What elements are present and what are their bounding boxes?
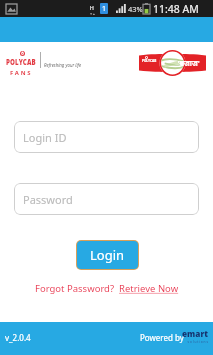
staticText: Password xyxy=(23,192,73,207)
button[interactable]: Login ID xyxy=(14,121,199,153)
button[interactable]: Retrieve Now xyxy=(119,282,179,295)
staticText: FANS xyxy=(10,69,33,77)
staticText: Forgot Password? xyxy=(35,282,115,295)
button[interactable]: Password xyxy=(14,183,199,215)
staticText: 11:48 AM xyxy=(153,2,199,16)
staticText: 'बजाज' xyxy=(177,58,200,68)
button[interactable]: Login xyxy=(77,241,138,269)
staticText: Login xyxy=(90,246,125,264)
staticText: Retrieve Now xyxy=(119,282,179,295)
staticText: 1 xyxy=(102,4,107,14)
staticText: POLYCAB xyxy=(6,56,36,68)
staticText: v_2.0.4 xyxy=(5,332,31,343)
staticText: Login ID xyxy=(23,130,67,145)
staticText: POLYCAB xyxy=(142,58,156,63)
staticText: Refreshing your life xyxy=(44,62,81,69)
staticText: H xyxy=(89,4,94,12)
staticText: 43% xyxy=(128,4,143,14)
staticText: emart xyxy=(182,328,208,339)
staticText: Powered by xyxy=(140,332,184,343)
staticText: s o l u t i o n s xyxy=(188,340,208,344)
